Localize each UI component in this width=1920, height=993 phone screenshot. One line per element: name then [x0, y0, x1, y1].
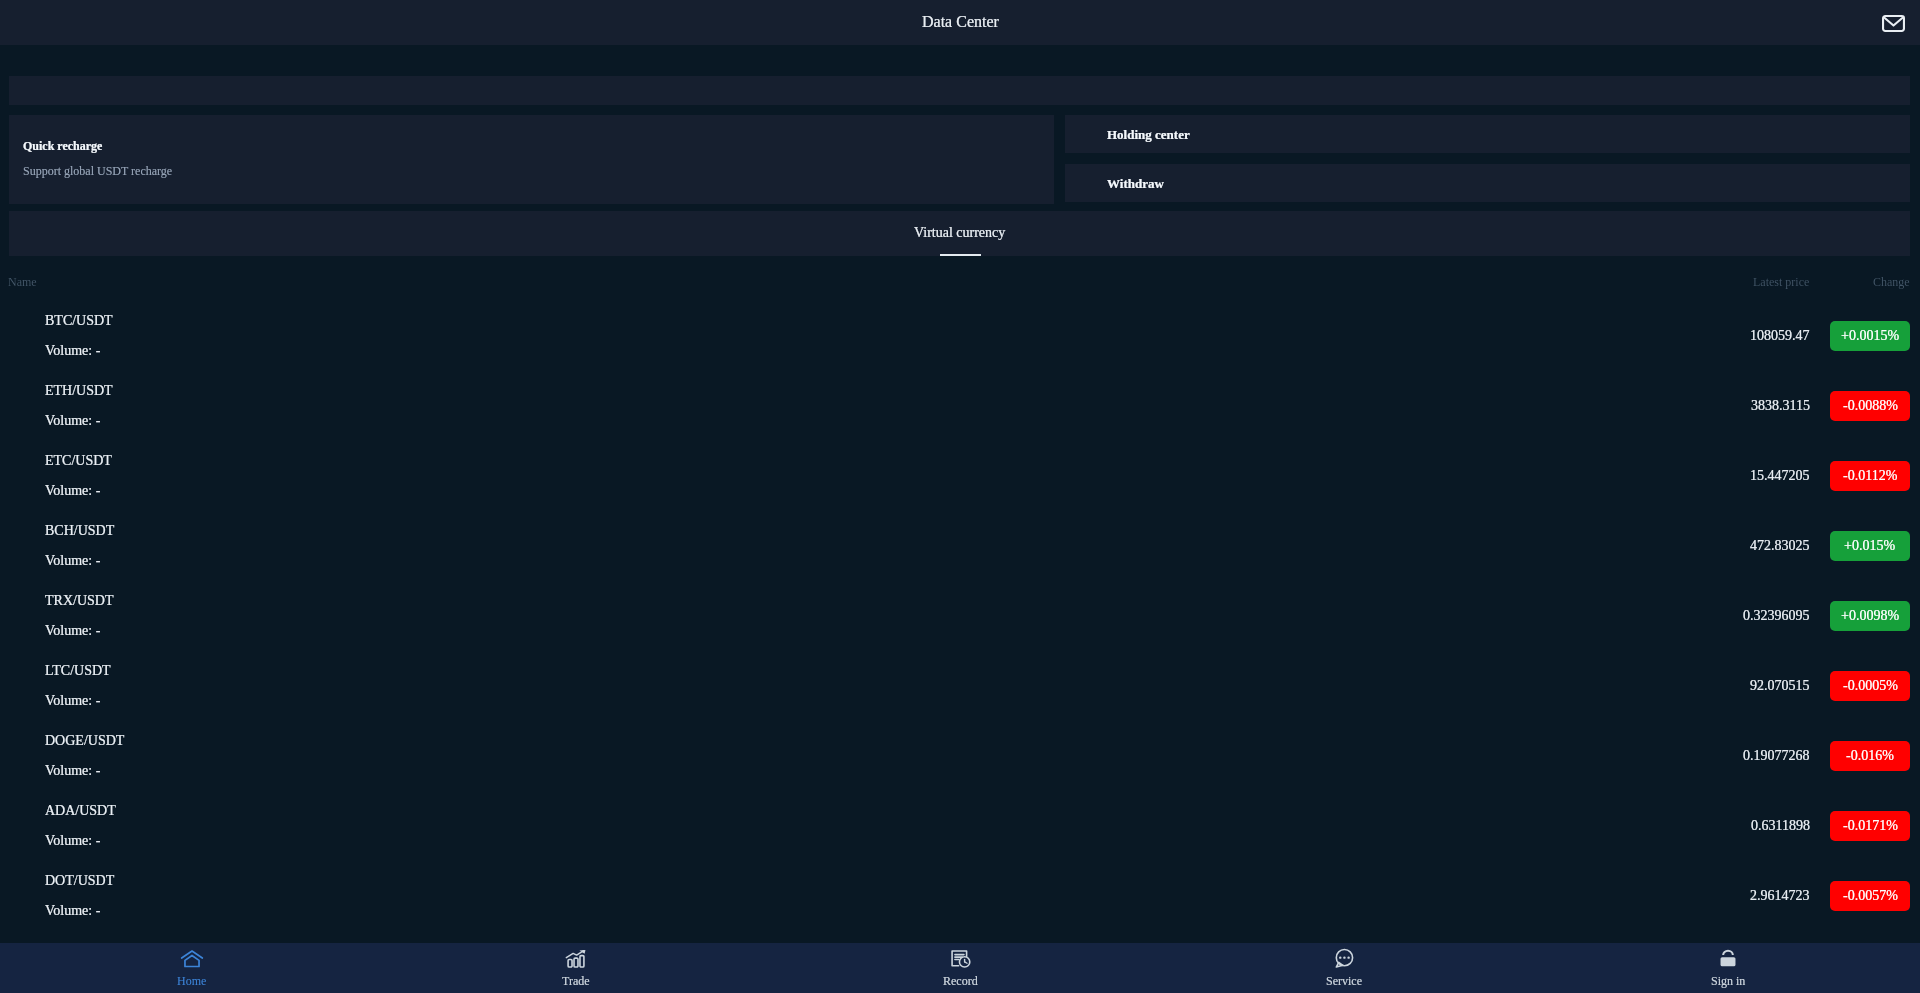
staticText: Volume: - [45, 623, 101, 639]
staticText: Data Center [922, 13, 999, 31]
staticText: Change [1873, 275, 1910, 288]
staticText: Support global USDT recharge [23, 164, 173, 177]
staticText: +0.0015% [1841, 328, 1900, 344]
staticText: ETH/USDT [45, 383, 113, 399]
staticText: 0.32396095 [1743, 608, 1810, 624]
staticText: ADA/USDT [45, 803, 116, 819]
button[interactable]: BCH/USDT [0, 511, 1920, 581]
button[interactable]: Home [0, 943, 384, 993]
staticText: -0.0171% [1843, 818, 1898, 834]
staticText: Virtual currency [914, 225, 1006, 241]
button[interactable]: LTC/USDT [0, 651, 1920, 721]
staticText: +0.015% [1844, 538, 1896, 554]
staticText: Service [1326, 974, 1362, 987]
staticText: 472.83025 [1750, 538, 1810, 554]
button[interactable]: DOGE/USDT [0, 721, 1920, 791]
button[interactable]: DOT/USDT [0, 861, 1920, 931]
button[interactable]: Quick recharge [9, 115, 1054, 204]
staticText: Withdraw [1107, 176, 1164, 190]
button[interactable]: ETC/USDT [0, 441, 1920, 511]
button[interactable]: Holding center [1065, 115, 1910, 153]
staticText: -0.0112% [1843, 468, 1898, 484]
staticText: ETC/USDT [45, 453, 112, 469]
button[interactable]: Service [1152, 943, 1536, 993]
button[interactable]: ADA/USDT [0, 791, 1920, 861]
staticText: BTC/USDT [45, 313, 113, 329]
button[interactable]: ETH/USDT [0, 371, 1920, 441]
staticText: -0.0005% [1843, 678, 1898, 694]
staticText: 2.9614723 [1750, 888, 1810, 904]
staticText: DOT/USDT [45, 873, 115, 889]
staticText: 0.6311898 [1751, 818, 1810, 834]
staticText: TRX/USDT [45, 593, 114, 609]
staticText: 92.070515 [1750, 678, 1810, 694]
staticText: BCH/USDT [45, 523, 115, 539]
staticText: DOGE/USDT [45, 733, 125, 749]
button[interactable]: Virtual currency [890, 211, 1030, 256]
staticText: Quick recharge [23, 139, 103, 152]
staticText: 0.19077268 [1743, 748, 1810, 764]
button[interactable]: Record [768, 943, 1152, 993]
button[interactable]: Messages [1876, 6, 1910, 40]
staticText: +0.0098% [1841, 608, 1900, 624]
staticText: Home [177, 974, 207, 987]
staticText: LTC/USDT [45, 663, 111, 679]
staticText: 3838.3115 [1751, 398, 1810, 414]
staticText: Volume: - [45, 833, 101, 849]
staticText: 108059.47 [1750, 328, 1810, 344]
staticText: 15.447205 [1750, 468, 1810, 484]
button[interactable]: Trade [384, 943, 768, 993]
staticText: Name [8, 275, 37, 288]
staticText: -0.0088% [1843, 398, 1898, 414]
staticText: -0.016% [1846, 748, 1894, 764]
staticText: Sign in [1711, 974, 1746, 987]
staticText: Volume: - [45, 553, 101, 569]
staticText: Record [943, 974, 978, 987]
staticText: Holding center [1107, 127, 1190, 141]
button[interactable]: BTC/USDT [0, 301, 1920, 371]
button[interactable]: Withdraw [1065, 164, 1910, 202]
button[interactable]: TRX/USDT [0, 581, 1920, 651]
staticText: Volume: - [45, 693, 101, 709]
button[interactable]: Sign in [1536, 943, 1920, 993]
staticText: Volume: - [45, 763, 101, 779]
staticText: Volume: - [45, 483, 101, 499]
staticText: Volume: - [45, 343, 101, 359]
staticText: Volume: - [45, 413, 101, 429]
staticText: Trade [562, 974, 590, 987]
staticText: -0.0057% [1843, 888, 1898, 904]
staticText: Volume: - [45, 903, 101, 919]
staticText: Latest price [1753, 275, 1810, 288]
